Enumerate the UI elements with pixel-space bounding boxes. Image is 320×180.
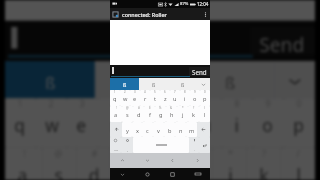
staticText: r — [110, 114, 120, 138]
staticText: & — [170, 106, 173, 110]
button[interactable]: & — [166, 106, 177, 122]
button[interactable]: & — [179, 148, 213, 180]
button[interactable]: ß — [110, 78, 139, 90]
button[interactable]: ß — [5, 61, 95, 98]
button[interactable]: ? — [247, 148, 281, 180]
button[interactable]: ß — [168, 78, 197, 90]
button[interactable]: Down — [135, 153, 160, 168]
button[interactable]: 2 — [120, 90, 130, 106]
button[interactable]: 4 — [98, 98, 129, 148]
button[interactable]: b — [164, 122, 175, 137]
staticText: z — [172, 114, 182, 138]
button[interactable]: # — [133, 106, 144, 122]
button[interactable]: Emoji and symbols — [110, 137, 121, 153]
staticText: c — [146, 127, 149, 135]
staticText: ? — [193, 106, 195, 110]
button[interactable]: Up — [110, 153, 135, 168]
button[interactable] — [5, 21, 250, 61]
button[interactable]: ß — [185, 61, 275, 98]
staticText: % — [157, 148, 166, 160]
button[interactable]: ? — [188, 106, 199, 122]
button[interactable]: 1 — [5, 98, 36, 148]
button[interactable]: Space — [133, 137, 189, 153]
button[interactable]: 1 — [110, 90, 120, 106]
staticText: * — [182, 106, 184, 110]
button[interactable]: v — [153, 122, 164, 137]
staticText: t — [154, 95, 157, 103]
staticText: 87% — [180, 1, 189, 7]
button[interactable]: 5 — [150, 90, 160, 106]
staticText: q — [14, 114, 27, 138]
button[interactable]: Right — [185, 153, 210, 168]
button[interactable]: ß — [95, 61, 185, 98]
button[interactable]: Home — [135, 168, 160, 180]
button[interactable] — [110, 65, 189, 78]
button[interactable]: * — [213, 148, 247, 180]
staticText: b — [168, 127, 172, 135]
staticText: u — [173, 95, 177, 103]
button[interactable]: 4 — [140, 90, 150, 106]
staticText: n — [179, 127, 183, 135]
staticText: 5 — [154, 90, 156, 94]
button[interactable]: 2 — [36, 98, 67, 148]
button[interactable]: ! — [5, 148, 42, 180]
staticText: e — [133, 95, 137, 103]
button[interactable]: c — [142, 122, 153, 137]
button[interactable]: $ — [110, 148, 144, 180]
button[interactable]: 8 — [180, 90, 190, 106]
button[interactable]: y — [122, 122, 132, 137]
button[interactable]: Send — [250, 27, 315, 55]
button[interactable]: $ — [144, 106, 155, 122]
staticText: ß — [181, 81, 185, 88]
staticText: h — [191, 163, 203, 180]
button[interactable]: Hide keyboard — [110, 168, 135, 180]
staticText: 4 — [144, 90, 146, 94]
button[interactable]: Voice input — [189, 137, 199, 153]
button[interactable]: 6 — [160, 90, 170, 106]
button[interactable]: ! — [110, 106, 122, 122]
staticText: 6 — [164, 90, 166, 94]
button[interactable]: 0 — [200, 90, 210, 106]
button[interactable]: 3 — [67, 98, 98, 148]
button[interactable]: m — [186, 122, 197, 137]
button[interactable]: Settings — [121, 137, 133, 153]
button[interactable]: Switch keyboard — [185, 168, 210, 180]
button[interactable]: x — [132, 122, 142, 137]
button[interactable]: Left — [160, 153, 185, 168]
staticText: t — [141, 114, 151, 138]
button[interactable]: % — [155, 106, 166, 122]
button[interactable]: n — [175, 122, 186, 137]
button[interactable]: 5 — [129, 98, 160, 148]
button[interactable]: 7 — [170, 90, 180, 106]
button[interactable]: ß — [139, 78, 168, 90]
button[interactable]: % — [144, 148, 179, 180]
staticText: k — [259, 163, 268, 180]
staticText: 5 — [141, 98, 148, 111]
button[interactable]: 3 — [130, 90, 140, 106]
button[interactable]: Shift — [110, 122, 122, 137]
button[interactable]: / — [199, 106, 210, 122]
button[interactable]: * — [177, 106, 188, 122]
button[interactable]: Backspace — [197, 122, 210, 137]
button[interactable]: More options — [201, 8, 210, 20]
button[interactable]: Send — [189, 67, 210, 76]
button[interactable]: connected: Roller — [110, 8, 210, 20]
button[interactable]: 6 — [160, 98, 191, 148]
button[interactable]: / — [281, 148, 315, 180]
button[interactable]: Expand suggestions — [275, 61, 315, 98]
button[interactable]: 9 — [190, 90, 200, 106]
button[interactable]: 7 — [191, 98, 222, 148]
staticText: 9 — [194, 90, 196, 94]
button[interactable]: Enter — [199, 137, 210, 153]
staticText: g — [157, 163, 169, 180]
button[interactable]: Recent apps — [160, 168, 185, 180]
button[interactable]: @ — [122, 106, 133, 122]
staticText: f — [149, 111, 151, 119]
button[interactable]: 9 — [253, 98, 284, 148]
button[interactable]: 0 — [284, 98, 315, 148]
button[interactable]: Expand suggestions — [197, 78, 210, 90]
button[interactable]: # — [76, 148, 110, 180]
button[interactable]: @ — [42, 148, 76, 180]
